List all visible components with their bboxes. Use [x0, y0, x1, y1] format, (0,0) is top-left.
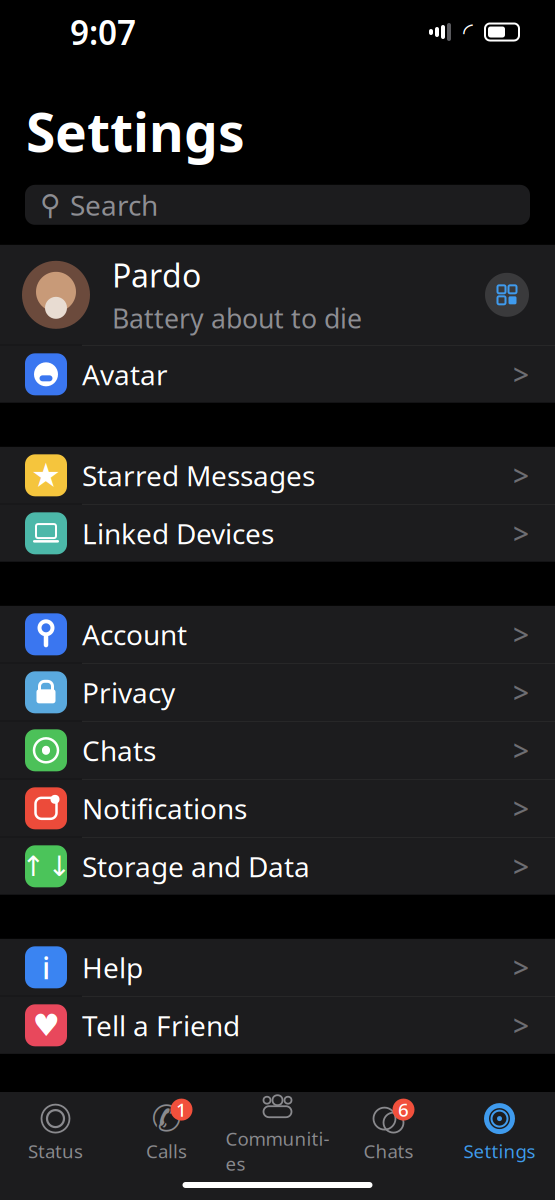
staticText: > [513, 732, 529, 769]
staticText: i [42, 947, 50, 988]
staticText: > [513, 515, 529, 552]
staticText: > [513, 457, 529, 494]
button[interactable]: Avatar [0, 346, 555, 403]
staticText: Avatar [82, 356, 168, 393]
staticText: ♥ [32, 1008, 59, 1043]
staticText: Settings [26, 96, 245, 167]
staticText: ✆ [151, 1098, 181, 1139]
staticText: Chats [82, 732, 156, 769]
staticText: ★ [31, 456, 61, 494]
staticText: > [513, 356, 529, 393]
staticText: Status [28, 1139, 83, 1163]
staticText: 9:07 [70, 10, 136, 54]
staticText: Pardo [112, 254, 201, 296]
staticText: 6 [398, 1097, 409, 1122]
staticText: Storage and Data [82, 848, 310, 885]
button[interactable]: 6 [333, 1103, 444, 1163]
staticText: Linked Devices [82, 515, 274, 552]
button[interactable]: Linked Devices [0, 505, 555, 562]
staticText: Battery about to die [112, 300, 362, 336]
staticText: Help [82, 949, 143, 986]
staticText: ↓ [47, 850, 70, 882]
button[interactable]: i [0, 939, 555, 996]
staticText: > [513, 674, 529, 711]
staticText: Settings [463, 1139, 535, 1163]
button[interactable]: ♥ [0, 997, 555, 1054]
button[interactable]: Communities [222, 1090, 333, 1176]
staticText: Tell a Friend [82, 1007, 240, 1044]
button[interactable]: Notifications [0, 780, 555, 837]
staticText: > [513, 949, 529, 986]
staticText: Chats [363, 1139, 413, 1163]
staticText: 1 [176, 1097, 187, 1122]
button[interactable]: Chats [0, 722, 555, 779]
button[interactable]: ↑ [0, 838, 555, 895]
staticText: Starred Messages [82, 457, 315, 494]
staticText: > [513, 1007, 529, 1044]
staticText: Search [70, 186, 158, 223]
button[interactable]: Pardo [0, 245, 555, 345]
staticText: > [513, 616, 529, 653]
staticText: Notifications [82, 790, 247, 827]
button[interactable]: Settings [444, 1103, 555, 1163]
staticText: Privacy [82, 674, 175, 711]
staticText: > [513, 848, 529, 885]
staticText: ↑ [21, 850, 44, 882]
staticText: Account [82, 616, 187, 653]
button[interactable]: ⚲ [25, 185, 530, 225]
staticText: ⚲ [40, 189, 61, 221]
button[interactable]: Privacy [0, 664, 555, 721]
button[interactable]: Status [0, 1103, 111, 1163]
staticText: ◜ [463, 18, 473, 46]
staticText: > [513, 790, 529, 827]
staticText: Calls [146, 1139, 187, 1163]
button[interactable]: ★ [0, 447, 555, 504]
button[interactable]: Account [0, 606, 555, 663]
staticText: Communities [225, 1126, 329, 1176]
button[interactable]: ✆ [111, 1103, 222, 1163]
